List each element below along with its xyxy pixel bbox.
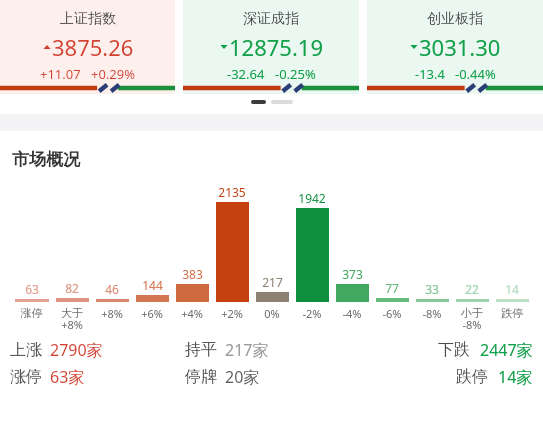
staticText: -0.44% [455, 65, 496, 83]
staticText: -13.4 [415, 65, 445, 83]
staticText: +4% [172, 306, 212, 321]
staticText: 3031.30 [419, 32, 501, 62]
staticText: 上涨 [10, 340, 42, 360]
staticText: 市场概况 [12, 149, 80, 170]
staticText: 217 [262, 274, 283, 290]
staticText: 46 [105, 281, 119, 297]
staticText: 22 [465, 281, 479, 297]
button[interactable]: Page 2 [271, 100, 293, 104]
staticText: 深证成指 [243, 10, 299, 28]
staticText: 大于 +8% [52, 306, 92, 333]
staticText: 14 [505, 281, 519, 297]
staticText: 33 [425, 281, 439, 297]
staticText: 跌停 [492, 306, 532, 320]
staticText: +8% [92, 306, 132, 321]
staticText: 12875.19 [229, 32, 323, 62]
button[interactable]: 深证成指 [183, 0, 359, 94]
staticText: 82 [65, 280, 79, 296]
staticText: 63家 [50, 366, 85, 388]
staticText: 217家 [225, 339, 269, 361]
staticText: -32.64 [227, 65, 265, 83]
staticText: 涨停 [10, 367, 42, 387]
staticText: 涨停 [11, 306, 52, 320]
button[interactable]: Page 1 [251, 100, 266, 104]
staticText: 跌停 [456, 367, 488, 387]
staticText: 1942 [298, 190, 326, 206]
staticText: 63 [25, 281, 39, 297]
staticText: +11.07 [40, 65, 81, 83]
staticText: 383 [182, 266, 203, 282]
button[interactable]: 创业板指 [367, 0, 543, 94]
staticText: 144 [142, 277, 163, 293]
staticText: +6% [132, 306, 172, 321]
button[interactable]: 上证指数 [0, 0, 175, 94]
staticText: 2135 [218, 184, 246, 200]
staticText: -0.25% [275, 65, 316, 83]
staticText: +0.29% [91, 65, 136, 83]
staticText: 下跌 [438, 340, 470, 360]
staticText: +2% [212, 306, 252, 321]
staticText: 20家 [225, 366, 260, 388]
staticText: -4% [332, 306, 372, 321]
staticText: 2447家 [480, 339, 533, 361]
staticText: -6% [372, 306, 412, 321]
staticText: 停牌 [185, 367, 217, 387]
staticText: 0% [252, 306, 292, 321]
staticText: 上证指数 [60, 10, 116, 28]
staticText: 创业板指 [427, 10, 483, 28]
staticText: 小于 -8% [452, 306, 492, 333]
staticText: 3875.26 [52, 32, 134, 62]
staticText: 2790家 [50, 339, 103, 361]
staticText: 77 [385, 280, 399, 296]
staticText: -8% [412, 306, 452, 321]
staticText: 14家 [498, 366, 533, 388]
staticText: 持平 [185, 340, 217, 360]
staticText: 373 [342, 266, 363, 282]
staticText: -2% [292, 306, 332, 321]
